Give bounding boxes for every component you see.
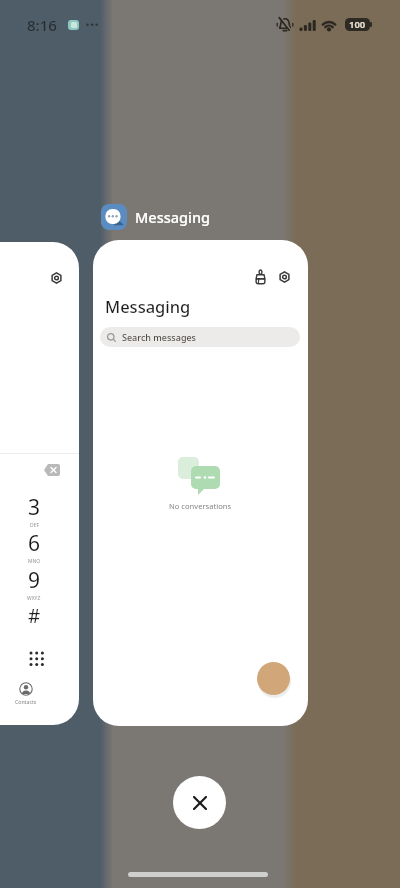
- staticText: WXYZ: [27, 595, 41, 602]
- staticText: 100: [349, 18, 366, 31]
- button[interactable]: 3: [0, 242, 79, 725]
- staticText: Search messages: [122, 331, 196, 343]
- button[interactable]: [173, 776, 226, 829]
- staticText: Messaging: [135, 207, 211, 227]
- staticText: MNO: [28, 558, 41, 565]
- staticText: Messaging: [105, 295, 191, 317]
- staticText: 8:16: [27, 15, 57, 35]
- staticText: 6: [28, 529, 41, 558]
- button[interactable]: Messaging: [101, 204, 211, 230]
- staticText: #: [28, 603, 41, 629]
- staticText: DEF: [30, 522, 40, 529]
- button[interactable]: [255, 270, 266, 284]
- staticText: Contacts: [15, 698, 37, 705]
- button[interactable]: Search messages: [100, 327, 300, 347]
- button[interactable]: Messaging: [93, 240, 308, 726]
- button[interactable]: [257, 662, 290, 695]
- staticText: 9: [28, 566, 41, 595]
- staticText: No conversations: [169, 501, 232, 511]
- button[interactable]: [279, 271, 290, 283]
- staticText: 3: [28, 493, 41, 522]
